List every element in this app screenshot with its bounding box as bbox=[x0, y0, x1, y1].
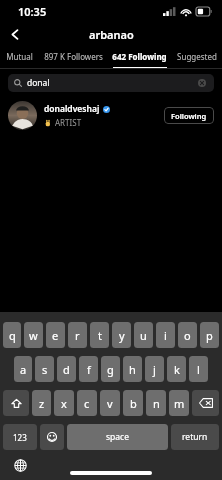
button[interactable]: Mutual bbox=[0, 47, 38, 69]
button[interactable]: r bbox=[68, 322, 87, 348]
button[interactable]: Backspace bbox=[192, 390, 219, 416]
button[interactable]: return bbox=[171, 424, 219, 450]
button[interactable]: 642 Following bbox=[108, 47, 171, 69]
staticText: o bbox=[184, 328, 191, 343]
button[interactable]: l bbox=[189, 356, 208, 382]
button[interactable]: n bbox=[146, 390, 166, 416]
staticText: Following bbox=[171, 111, 207, 121]
staticText: k bbox=[174, 362, 180, 377]
button[interactable]: y bbox=[112, 322, 131, 348]
staticText: space bbox=[106, 431, 129, 443]
staticText: donal bbox=[27, 77, 50, 89]
button[interactable]: u bbox=[134, 322, 153, 348]
staticText: s bbox=[42, 362, 48, 377]
staticText: l bbox=[197, 362, 200, 377]
staticText: w bbox=[29, 328, 38, 343]
button[interactable]: v bbox=[100, 390, 120, 416]
staticText: z bbox=[39, 396, 45, 411]
button[interactable]: i bbox=[156, 322, 175, 348]
staticText: 642 Following bbox=[112, 51, 167, 62]
staticText: u bbox=[140, 328, 147, 343]
staticText: Suggested bbox=[177, 51, 217, 62]
button[interactable]: Emoji bbox=[40, 424, 64, 450]
button[interactable]: Shift bbox=[3, 390, 29, 416]
staticText: j bbox=[153, 362, 156, 377]
button[interactable]: 123 bbox=[3, 424, 37, 450]
button[interactable]: p bbox=[200, 322, 219, 348]
staticText: c bbox=[84, 396, 90, 411]
button[interactable]: space bbox=[67, 424, 168, 450]
staticText: g bbox=[107, 362, 114, 377]
button[interactable]: b bbox=[123, 390, 143, 416]
staticText: return bbox=[182, 431, 208, 443]
button[interactable]: Following bbox=[164, 107, 214, 124]
button[interactable]: w bbox=[24, 322, 43, 348]
button[interactable]: q bbox=[3, 322, 21, 348]
staticText: h bbox=[129, 362, 136, 377]
button[interactable]: m bbox=[169, 390, 189, 416]
staticText: Mutual bbox=[6, 51, 33, 62]
staticText: d bbox=[63, 362, 70, 377]
staticText: p bbox=[206, 328, 213, 343]
button[interactable]: o bbox=[178, 322, 197, 348]
button[interactable]: k bbox=[167, 356, 186, 382]
button[interactable]: donal bbox=[8, 74, 214, 92]
button[interactable]: 897 K Followers bbox=[38, 47, 108, 69]
staticText: v bbox=[107, 396, 113, 411]
button[interactable]: f bbox=[79, 356, 98, 382]
button[interactable]: t bbox=[90, 322, 109, 348]
staticText: r bbox=[75, 328, 80, 343]
staticText: i bbox=[164, 328, 167, 343]
staticText: n bbox=[153, 396, 160, 411]
staticText: a bbox=[20, 362, 27, 377]
staticText: 123 bbox=[13, 432, 27, 443]
button[interactable]: Change keyboard language bbox=[12, 457, 28, 473]
button[interactable]: j bbox=[145, 356, 164, 382]
staticText: 897 K Followers bbox=[44, 51, 103, 62]
staticText: m bbox=[174, 396, 185, 411]
staticText: f bbox=[87, 362, 91, 377]
staticText: donaldveshaj bbox=[44, 103, 100, 115]
button[interactable]: Back bbox=[0, 22, 30, 47]
button[interactable]: x bbox=[54, 390, 74, 416]
staticText: q bbox=[9, 328, 16, 343]
staticText: ARTIST bbox=[55, 117, 82, 128]
staticText: b bbox=[130, 396, 137, 411]
staticText: t bbox=[98, 328, 102, 343]
button[interactable]: s bbox=[35, 356, 54, 382]
button[interactable]: g bbox=[101, 356, 120, 382]
button[interactable]: a bbox=[14, 356, 32, 382]
button[interactable]: e bbox=[46, 322, 65, 348]
staticText: e bbox=[52, 328, 59, 343]
button[interactable]: h bbox=[123, 356, 142, 382]
button[interactable]: donaldveshaj bbox=[0, 97, 222, 133]
button[interactable]: Clear search bbox=[196, 77, 208, 89]
button[interactable]: Suggested bbox=[171, 47, 222, 69]
button[interactable]: c bbox=[77, 390, 97, 416]
staticText: arbanao bbox=[89, 27, 134, 42]
staticText: y bbox=[119, 328, 125, 343]
staticText: x bbox=[61, 396, 67, 411]
staticText: 10:35 bbox=[18, 4, 47, 19]
button[interactable]: z bbox=[32, 390, 51, 416]
button[interactable]: d bbox=[57, 356, 76, 382]
